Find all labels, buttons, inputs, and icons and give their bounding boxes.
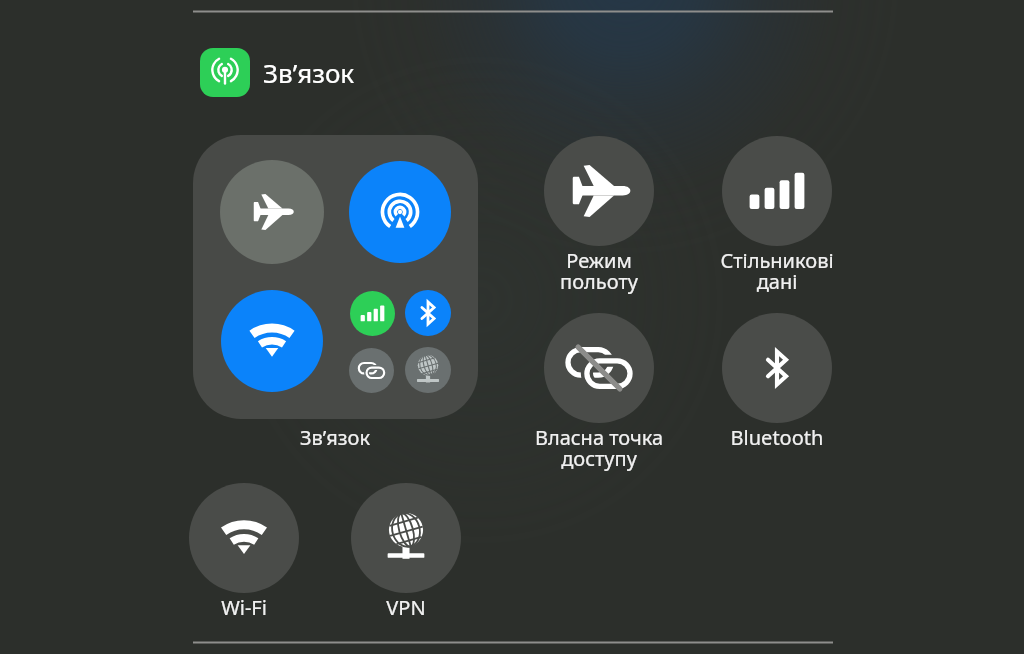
staticText: VPN: [286, 594, 526, 621]
button[interactable]: [221, 290, 323, 392]
staticText: Власна точка доступу: [479, 424, 719, 472]
button[interactable]: [405, 290, 451, 336]
button[interactable]: [193, 135, 478, 419]
button[interactable]: Cellular data: [657, 136, 897, 295]
button[interactable]: Bluetooth: [657, 313, 897, 451]
staticText: Wi-Fi: [124, 594, 364, 621]
button[interactable]: Personal hotspot: [479, 313, 719, 472]
staticText: Bluetooth: [657, 424, 897, 451]
button[interactable]: Airplane mode: [479, 136, 719, 295]
button[interactable]: VPN: [286, 483, 526, 621]
button[interactable]: [220, 160, 324, 264]
button[interactable]: [350, 291, 395, 336]
staticText: Зв’язок: [215, 424, 455, 451]
staticText: Зв’язок: [263, 55, 355, 90]
button[interactable]: [349, 161, 451, 263]
button[interactable]: Wi-Fi: [124, 483, 364, 621]
staticText: Стільникові дані: [657, 247, 897, 295]
button[interactable]: [349, 348, 394, 393]
button[interactable]: Зв’язок: [200, 48, 355, 97]
button[interactable]: [405, 347, 451, 393]
staticText: Режим польоту: [479, 247, 719, 295]
